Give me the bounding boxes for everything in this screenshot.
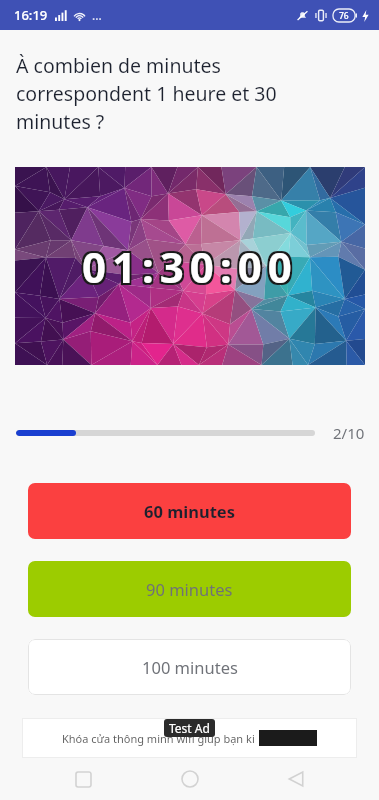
staticText: 01:30:00 <box>80 236 296 293</box>
staticText: 01:30:00 <box>80 240 296 297</box>
staticText: 01:30:00 <box>82 238 298 295</box>
button[interactable]: Home <box>166 758 214 800</box>
button[interactable]: Recent apps <box>59 758 107 800</box>
staticText: 60 minutes <box>144 500 235 522</box>
staticText: Khóa cửa thông minh wifi giúp bạn ki <box>62 731 255 746</box>
button[interactable]: Khóa cửa thông minh wifi giúp bạn ki <box>22 718 357 758</box>
staticText: ... <box>92 7 102 23</box>
button[interactable]: 100 minutes <box>28 639 351 695</box>
button[interactable]: 90 minutes <box>28 561 351 617</box>
staticText: 76 <box>339 10 349 22</box>
button[interactable]: Back <box>272 758 320 800</box>
staticText: À combien de minutes correspondent 1 heu… <box>16 52 355 135</box>
button[interactable]: 60 minutes <box>28 483 351 539</box>
staticText: 100 minutes <box>142 656 238 678</box>
staticText: 90 minutes <box>146 578 233 600</box>
staticText: Test Ad <box>169 720 210 736</box>
staticText: 2/10 <box>333 423 365 443</box>
staticText: 01:30:00 <box>84 240 300 297</box>
staticText: 01:30:00 <box>84 236 300 293</box>
staticText: 16:19 <box>14 6 48 24</box>
